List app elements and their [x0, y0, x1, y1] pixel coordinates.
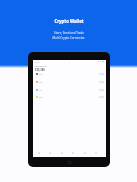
- staticText: 9:41: [35, 61, 39, 64]
- button[interactable]: LTC: [33, 86, 106, 94]
- button[interactable]: Markets: [59, 150, 65, 156]
- button[interactable]: ETH: [33, 70, 106, 78]
- staticText: Total Balance: [35, 65, 47, 68]
- staticText: BNB: [39, 96, 43, 99]
- staticText: Multi Crypto Currencies: [52, 36, 85, 40]
- button[interactable]: BNB: [33, 93, 106, 101]
- button[interactable]: Profile: [93, 150, 99, 156]
- button[interactable]: Trade: [70, 150, 76, 156]
- staticText: $25,380: [35, 68, 45, 72]
- staticText: ETH: [39, 73, 43, 76]
- button[interactable]: Cards: [82, 150, 88, 156]
- button[interactable]: Wallet: [47, 150, 53, 156]
- staticText: Store, Send and Trade: [54, 31, 84, 35]
- staticText: BTC: [39, 81, 43, 84]
- staticText: LTC: [39, 89, 43, 92]
- button[interactable]: Home: [36, 150, 42, 156]
- staticText: Crypto Wallet: [54, 18, 84, 24]
- button[interactable]: BTC: [33, 78, 106, 86]
